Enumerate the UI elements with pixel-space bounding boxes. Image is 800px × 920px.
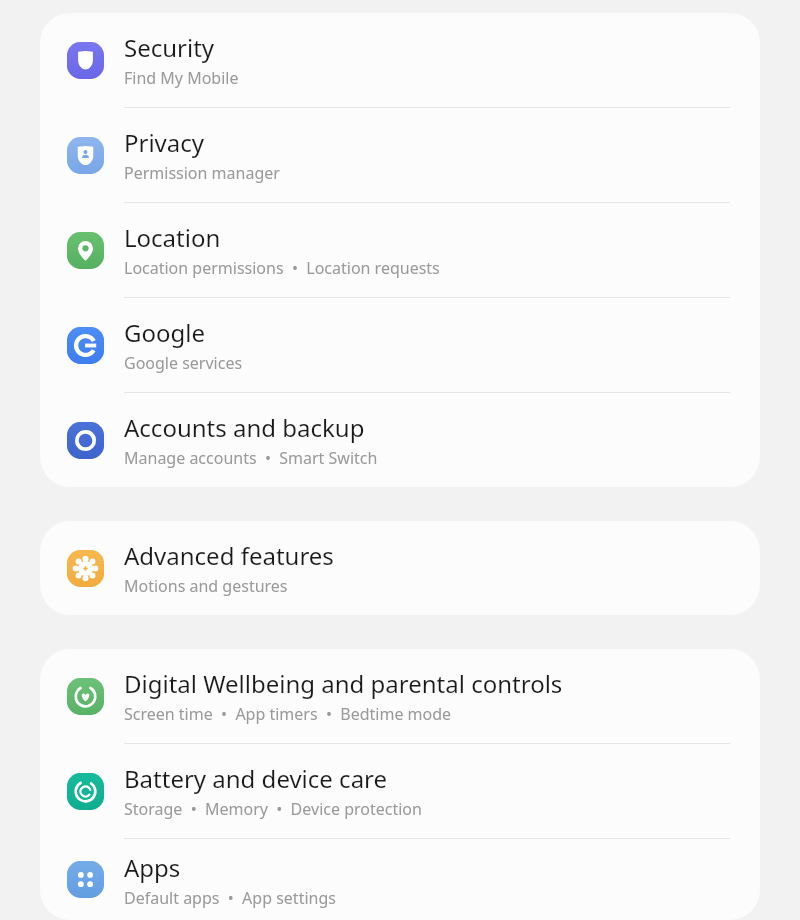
staticText: Location permissions • Location requests — [124, 257, 440, 279]
staticText: Storage • Memory • Device protection — [124, 798, 422, 820]
staticText: Digital Wellbeing and parental controls — [124, 667, 563, 700]
staticText: Apps — [124, 851, 181, 884]
staticText: Motions and gestures — [124, 575, 288, 597]
button[interactable]: Security — [40, 13, 760, 108]
staticText: Accounts and backup — [124, 411, 365, 444]
button[interactable]: Apps — [40, 839, 760, 920]
staticText: Permission manager — [124, 162, 280, 184]
staticText: Google — [124, 316, 205, 349]
staticText: Advanced features — [124, 539, 334, 572]
button[interactable]: Battery and device care — [40, 744, 760, 839]
button[interactable]: Digital Wellbeing and parental controls — [40, 649, 760, 744]
button[interactable]: Location — [40, 203, 760, 298]
staticText: Default apps • App settings — [124, 887, 336, 909]
button[interactable]: Advanced features — [40, 521, 760, 615]
staticText: Find My Mobile — [124, 67, 239, 89]
button[interactable]: Google — [40, 298, 760, 393]
staticText: Manage accounts • Smart Switch — [124, 447, 378, 469]
button[interactable]: Privacy — [40, 108, 760, 203]
staticText: Privacy — [124, 126, 205, 159]
staticText: Security — [124, 31, 215, 64]
staticText: Location — [124, 221, 221, 254]
button[interactable]: Accounts and backup — [40, 393, 760, 487]
staticText: Screen time • App timers • Bedtime mode — [124, 703, 452, 725]
staticText: Google services — [124, 352, 243, 374]
staticText: Battery and device care — [124, 762, 388, 795]
